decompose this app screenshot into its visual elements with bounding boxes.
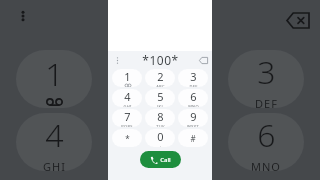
button[interactable]: Backspace [284,6,312,34]
button[interactable]: 2 [145,69,175,87]
button[interactable]: 5 [145,89,175,107]
button[interactable]: Dialpad options [111,54,123,66]
button[interactable]: 9 [178,109,208,127]
staticText: GHI [123,104,132,107]
staticText: TUV [156,124,165,127]
staticText: # [190,133,196,144]
button[interactable]: 6 [178,89,208,107]
button[interactable]: More options [13,6,33,26]
staticText: 0 [157,129,164,144]
staticText: 7 [124,109,131,124]
staticText: PQRS [121,124,133,127]
button[interactable]: 3 [178,69,208,87]
staticText: * [125,133,130,144]
staticText: 8 [157,109,164,124]
staticText: GHI [43,159,66,171]
button[interactable]: 4 [16,113,92,171]
staticText: 4 [45,113,64,157]
staticText: 5 [157,89,164,104]
button[interactable]: * [112,129,142,147]
staticText: MNO [251,159,281,171]
staticText: DEF [189,84,198,87]
staticText: + [159,144,162,147]
staticText: 1 [124,69,131,84]
button[interactable]: Call [140,151,181,168]
staticText: 4 [124,89,131,104]
staticText: 3 [257,50,276,94]
staticText: Call [160,156,171,164]
button[interactable]: 4 [112,89,142,107]
button[interactable]: # [178,129,208,147]
button[interactable]: 6 [228,113,304,171]
staticText: 1 [45,52,64,96]
button[interactable]: 0 [145,129,175,147]
staticText: ABC [156,84,165,87]
staticText: WXYZ [187,124,199,127]
button[interactable]: 1 [16,50,92,108]
staticText: DEF [255,96,278,108]
button[interactable]: 8 [145,109,175,127]
button[interactable]: Backspace [197,54,209,66]
staticText: 6 [190,89,197,104]
staticText: 9 [190,109,197,124]
staticText: MNO [188,104,199,107]
staticText: 2 [157,69,164,84]
staticText: *100* [142,52,179,68]
staticText: JKL [157,104,164,107]
button[interactable]: 7 [112,109,142,127]
staticText: 6 [257,113,276,157]
button[interactable]: 1 [112,69,142,87]
button[interactable]: 3 [228,50,304,108]
staticText: 3 [190,69,197,84]
